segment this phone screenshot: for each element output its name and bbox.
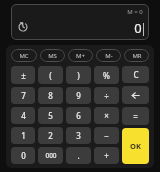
staticText: MS — [48, 52, 57, 60]
button[interactable]: 0 — [11, 147, 35, 164]
staticText: 1 — [21, 130, 26, 141]
staticText: 9 — [76, 90, 81, 101]
staticText: MC — [19, 52, 29, 60]
button[interactable]: 4 — [11, 107, 35, 124]
staticText: ) — [77, 70, 80, 81]
staticText: 0 — [134, 19, 142, 37]
staticText: 7 — [21, 90, 26, 101]
staticText: ÷ — [104, 90, 109, 101]
staticText: MR — [132, 52, 142, 60]
button[interactable]: ) — [66, 66, 91, 84]
button[interactable]: 1 — [11, 127, 35, 144]
staticText: = — [133, 111, 138, 122]
button[interactable]: 7 — [11, 87, 35, 104]
staticText: × — [104, 110, 109, 121]
staticText: 000 — [45, 151, 57, 160]
button[interactable]: 5 — [38, 107, 63, 124]
button[interactable]: History — [18, 22, 28, 32]
button[interactable]: × — [94, 107, 119, 124]
button[interactable]: . — [66, 147, 91, 164]
staticText: + — [104, 150, 109, 161]
staticText: M+ — [76, 52, 85, 60]
button[interactable]: MC — [11, 49, 37, 62]
button[interactable]: % — [94, 66, 119, 84]
button[interactable]: OK — [122, 128, 149, 164]
staticText: ( — [49, 70, 52, 81]
staticText: 8 — [48, 90, 53, 101]
button[interactable]: M+ — [68, 49, 93, 62]
staticText: M- — [105, 52, 113, 60]
button[interactable]: Backspace — [122, 86, 149, 104]
button[interactable]: ± — [11, 66, 35, 84]
staticText: 5 — [48, 110, 53, 121]
staticText: M = 0 — [127, 8, 143, 16]
button[interactable]: MS — [40, 49, 65, 62]
staticText: 4 — [21, 110, 26, 121]
staticText: ± — [21, 70, 26, 81]
staticText: − — [104, 130, 109, 141]
button[interactable]: 000 — [38, 147, 63, 164]
button[interactable]: 9 — [66, 87, 91, 104]
button[interactable]: ÷ — [94, 87, 119, 104]
button[interactable]: 2 — [38, 127, 63, 144]
button[interactable]: = — [122, 107, 149, 125]
button[interactable]: − — [94, 127, 119, 144]
button[interactable]: 8 — [38, 87, 63, 104]
staticText: 3 — [76, 130, 81, 141]
staticText: C — [133, 69, 139, 80]
staticText: OK — [130, 141, 141, 151]
staticText: 2 — [48, 130, 53, 141]
staticText: 0 — [21, 150, 26, 161]
staticText: . — [77, 150, 80, 161]
staticText: % — [103, 70, 110, 81]
button[interactable]: M- — [96, 49, 121, 62]
button[interactable]: + — [94, 147, 119, 164]
button[interactable]: MR — [124, 49, 149, 62]
button[interactable]: C — [122, 66, 149, 83]
button[interactable]: 6 — [66, 107, 91, 124]
button[interactable]: 3 — [66, 127, 91, 144]
staticText: 6 — [76, 110, 81, 121]
button[interactable]: ( — [38, 66, 63, 84]
